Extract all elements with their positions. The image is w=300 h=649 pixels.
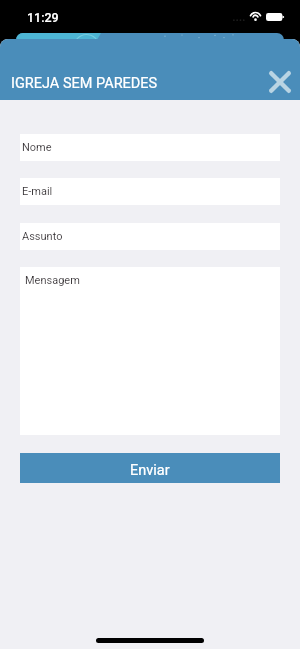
staticText: IGREJA SEM PAREDES [11, 75, 158, 92]
button[interactable]: Mensagem [20, 267, 280, 435]
button[interactable]: E-mail [20, 178, 280, 205]
staticText: Nome [22, 141, 52, 154]
staticText: 11:29 [27, 10, 59, 25]
staticText: E-mail [22, 185, 53, 198]
staticText: Assunto [22, 230, 63, 243]
button[interactable]: Assunto [20, 223, 280, 250]
button[interactable]: Nome [20, 134, 280, 161]
staticText: Mensagem [25, 274, 80, 287]
button[interactable]: Enviar [20, 453, 280, 483]
button[interactable]: Close [262, 64, 298, 100]
staticText: Enviar [130, 462, 170, 479]
